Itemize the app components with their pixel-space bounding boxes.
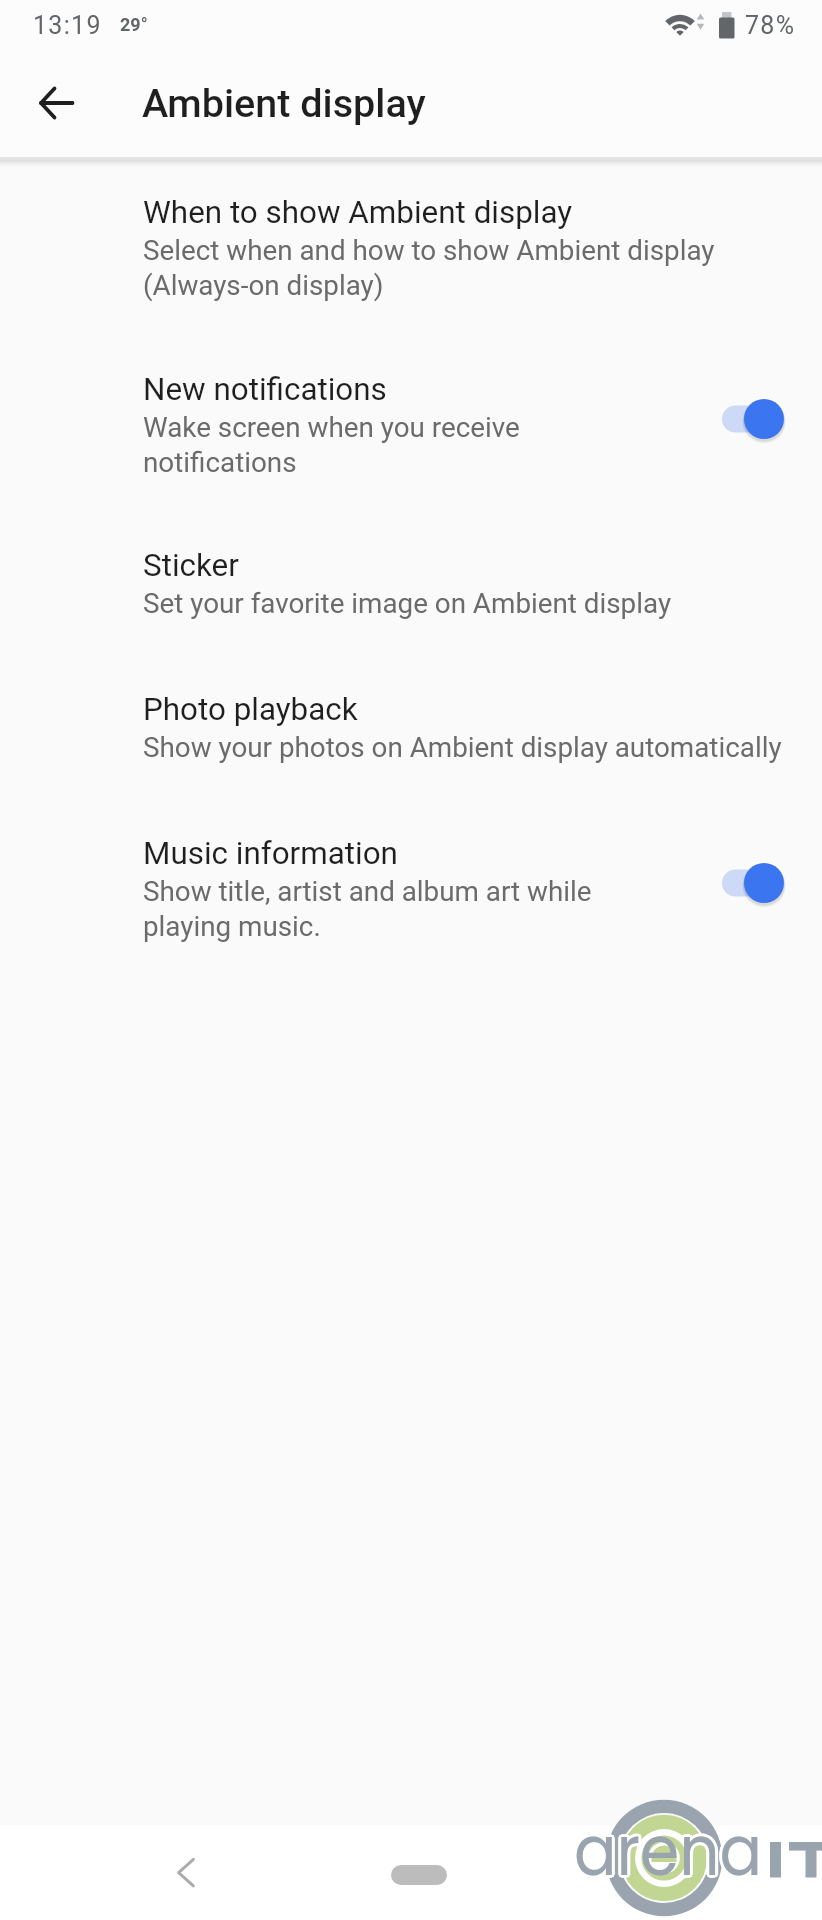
- staticText: arena: [571, 1825, 759, 1896]
- staticText: 29°: [120, 14, 148, 35]
- staticText: arena: [575, 1825, 763, 1894]
- staticText: Ambient display: [142, 80, 426, 126]
- button[interactable]: New notifications: [0, 368, 822, 526]
- button[interactable]: Sticker: [0, 544, 822, 672]
- staticText: arena: [577, 1825, 765, 1896]
- staticText: arena: [574, 1813, 762, 1825]
- staticText: arena: [576, 1816, 764, 1825]
- button[interactable]: When to show Ambient display: [0, 191, 822, 351]
- staticText: arena: [574, 1819, 762, 1825]
- staticText: arena: [575, 1825, 763, 1897]
- staticText: arena: [575, 1825, 763, 1895]
- staticText: arena: [575, 1825, 763, 1898]
- staticText: arena: [576, 1818, 764, 1825]
- staticText: arena: [572, 1825, 760, 1898]
- staticText: arena: [576, 1815, 764, 1825]
- button[interactable]: Back: [20, 67, 92, 139]
- staticText: arena: [576, 1817, 764, 1825]
- staticText: arena: [572, 1825, 760, 1897]
- staticText: arena: [573, 1818, 761, 1825]
- staticText: arena: [577, 1816, 765, 1825]
- staticText: arena: [574, 1815, 762, 1825]
- staticText: arena: [572, 1825, 760, 1894]
- staticText: 78%: [745, 11, 796, 40]
- staticText: arena: [574, 1814, 762, 1825]
- staticText: arena: [573, 1825, 761, 1897]
- staticText: arena: [576, 1825, 764, 1895]
- button[interactable]: Photo playback: [0, 688, 822, 816]
- staticText: Show your photos on Ambient display auto…: [143, 729, 782, 764]
- staticText: arena: [574, 1825, 762, 1897]
- staticText: Sticker: [143, 544, 239, 585]
- staticText: arena: [575, 1816, 763, 1825]
- staticText: arena: [573, 1825, 761, 1896]
- staticText: arena: [576, 1814, 764, 1825]
- staticText: arena: [574, 1825, 762, 1896]
- staticText: arena: [574, 1825, 762, 1893]
- staticText: 13:19: [33, 11, 102, 40]
- staticText: arena: [574, 1825, 762, 1895]
- staticText: arena: [574, 1825, 762, 1894]
- staticText: arena: [573, 1814, 761, 1825]
- staticText: arena: [573, 1825, 761, 1894]
- staticText: arena: [576, 1825, 764, 1897]
- staticText: arena: [573, 1817, 761, 1825]
- staticText: arena: [575, 1815, 763, 1825]
- staticText: arena: [572, 1814, 760, 1825]
- staticText: arena: [574, 1817, 762, 1825]
- button[interactable]: Music information: [0, 832, 822, 990]
- staticText: New notifications: [143, 368, 387, 409]
- staticText: arena: [573, 1815, 761, 1825]
- staticText: Music information: [143, 832, 398, 873]
- staticText: arena: [575, 1825, 763, 1896]
- staticText: Photo playback: [143, 688, 358, 729]
- staticText: arena: [573, 1816, 761, 1825]
- staticText: Select when and how to show Ambient disp…: [143, 232, 743, 302]
- staticText: arena: [572, 1817, 760, 1825]
- staticText: arena: [574, 1825, 762, 1898]
- button[interactable]: Home: [383, 1844, 455, 1906]
- staticText: arena: [575, 1818, 763, 1825]
- staticText: arena: [576, 1825, 764, 1898]
- button[interactable]: On/off switch: [700, 389, 800, 449]
- staticText: When to show Ambient display: [143, 191, 573, 232]
- staticText: arena: [576, 1825, 764, 1896]
- button[interactable]: Back: [150, 1837, 222, 1909]
- staticText: arena: [575, 1814, 763, 1825]
- staticText: arena: [572, 1818, 760, 1825]
- staticText: arena: [573, 1825, 761, 1898]
- staticText: arena: [576, 1825, 764, 1894]
- staticText: arena: [574, 1825, 762, 1899]
- staticText: arena: [572, 1825, 760, 1895]
- staticText: arena: [571, 1816, 759, 1825]
- staticText: Show title, artist and album art while p…: [143, 873, 603, 943]
- staticText: arena: [572, 1825, 760, 1896]
- staticText: arena: [574, 1818, 762, 1825]
- staticText: Wake screen when you receive notificatio…: [143, 409, 563, 479]
- staticText: arena: [572, 1815, 760, 1825]
- staticText: arena: [574, 1816, 762, 1825]
- staticText: Set your favorite image on Ambient displ…: [143, 585, 672, 620]
- staticText: arena: [575, 1817, 763, 1825]
- staticText: arena: [572, 1816, 760, 1825]
- button[interactable]: On/off switch: [700, 853, 800, 913]
- staticText: arena: [573, 1825, 761, 1895]
